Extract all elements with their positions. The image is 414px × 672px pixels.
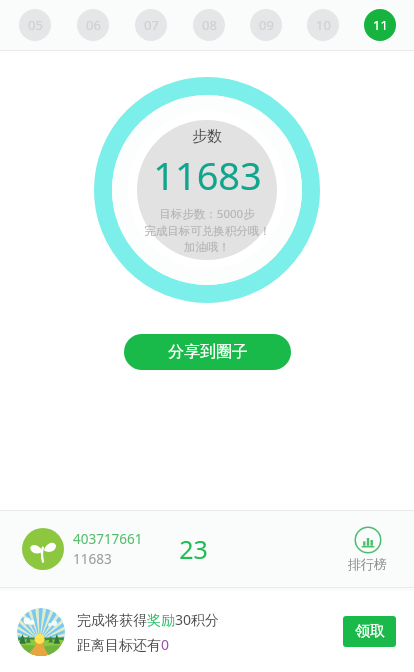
button[interactable]: 领取	[343, 616, 396, 647]
button[interactable]: 05	[6, 0, 64, 50]
button[interactable]: 11	[351, 0, 408, 50]
button[interactable]: 07	[122, 0, 180, 50]
button[interactable]: 06	[64, 0, 122, 50]
staticText: 目标步数：5000步	[159, 206, 255, 222]
staticText: 08	[202, 16, 217, 34]
button[interactable]: 08	[180, 0, 237, 50]
staticText: 排行榜	[348, 556, 387, 572]
staticText: 加油哦！	[184, 240, 230, 254]
staticText: 10	[316, 16, 331, 34]
other: Leaderboard	[354, 526, 382, 554]
staticText: 领取	[355, 622, 385, 641]
staticText: 完成将获得奖励30积分	[77, 610, 220, 629]
button[interactable]: Sprout level	[22, 528, 143, 570]
staticText: 距离目标还有0	[77, 635, 170, 654]
staticText: 403717661	[73, 530, 143, 548]
staticText: 步数	[192, 127, 222, 146]
staticText: 完成目标可兑换积分哦！	[144, 224, 271, 238]
staticText: 11683	[73, 550, 112, 568]
button[interactable]: 09	[237, 0, 294, 50]
staticText: 11683	[153, 149, 262, 201]
button[interactable]: 10	[294, 0, 351, 50]
staticText: 05	[28, 16, 43, 34]
other: Sprout level	[22, 528, 64, 570]
other: Reward landscape	[17, 608, 65, 656]
button[interactable]: 分享到圈子	[124, 334, 291, 370]
staticText: 分享到圈子	[168, 342, 248, 362]
button[interactable]: Leaderboard	[342, 523, 393, 575]
staticText: 07	[144, 16, 159, 34]
staticText: 11	[373, 16, 388, 34]
staticText: 06	[86, 16, 101, 34]
staticText: 09	[259, 16, 274, 34]
staticText: 23	[179, 532, 208, 566]
